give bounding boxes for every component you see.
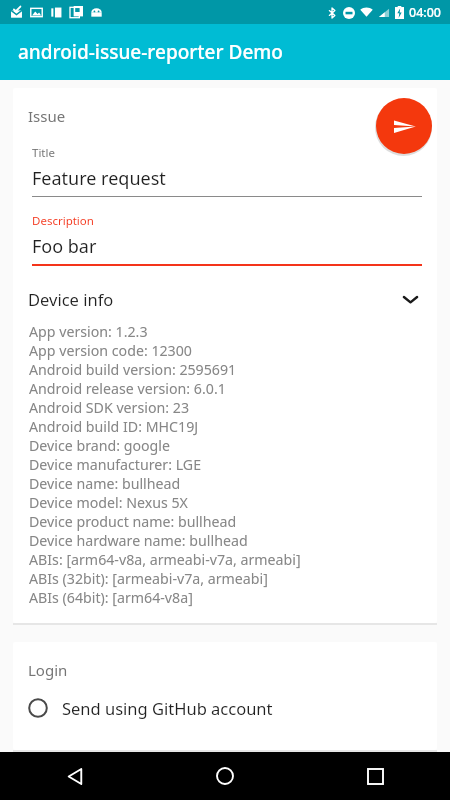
staticText: ABIs (32bit): [armeabi-v7a, armeabi] [29,569,268,588]
staticText: Android SDK version: 23 [29,398,190,417]
staticText: Login [28,660,68,680]
button[interactable]: Send report [376,98,432,154]
staticText: Device name: bullhead [29,474,181,493]
staticText: Feature request [32,166,166,191]
staticText: Device model: Nexus 5X [29,493,188,512]
button[interactable]: Send using GitHub account [28,697,422,719]
staticText: Device hardware name: bullhead [29,531,248,550]
staticText: Android build version: 2595691 [29,360,237,379]
staticText: Description [32,213,94,229]
staticText: Device brand: google [29,436,170,455]
staticText: Send using GitHub account [62,697,273,719]
staticText: ABIs: [arm64-v8a, armeabi-v7a, armeabi] [29,550,301,569]
staticText: Device info [28,288,398,310]
button[interactable]: Title [32,145,422,197]
staticText: android-issue-reporter Demo [18,39,283,65]
button[interactable]: Description [32,213,422,266]
staticText: App version: 1.2.3 [29,322,148,341]
button[interactable]: Home [150,752,300,800]
staticText: Title [32,145,55,161]
button[interactable]: android-issue-reporter Demo [0,24,450,80]
staticText: ABIs (64bit): [arm64-v8a] [29,588,193,607]
staticText: Issue [28,106,66,126]
staticText: Device product name: bullhead [29,512,237,531]
staticText: Android build ID: MHC19J [29,417,199,436]
button[interactable]: Device info [28,287,422,311]
button[interactable]: Recent apps [300,752,450,800]
staticText: App version code: 12300 [29,341,192,360]
staticText: Device manufacturer: LGE [29,455,202,474]
staticText: Foo bar [32,234,97,259]
other: Collapse device info [398,287,422,311]
staticText: 04:00 [409,4,442,21]
button[interactable]: Back [0,752,150,800]
staticText: Android release version: 6.0.1 [29,379,226,398]
